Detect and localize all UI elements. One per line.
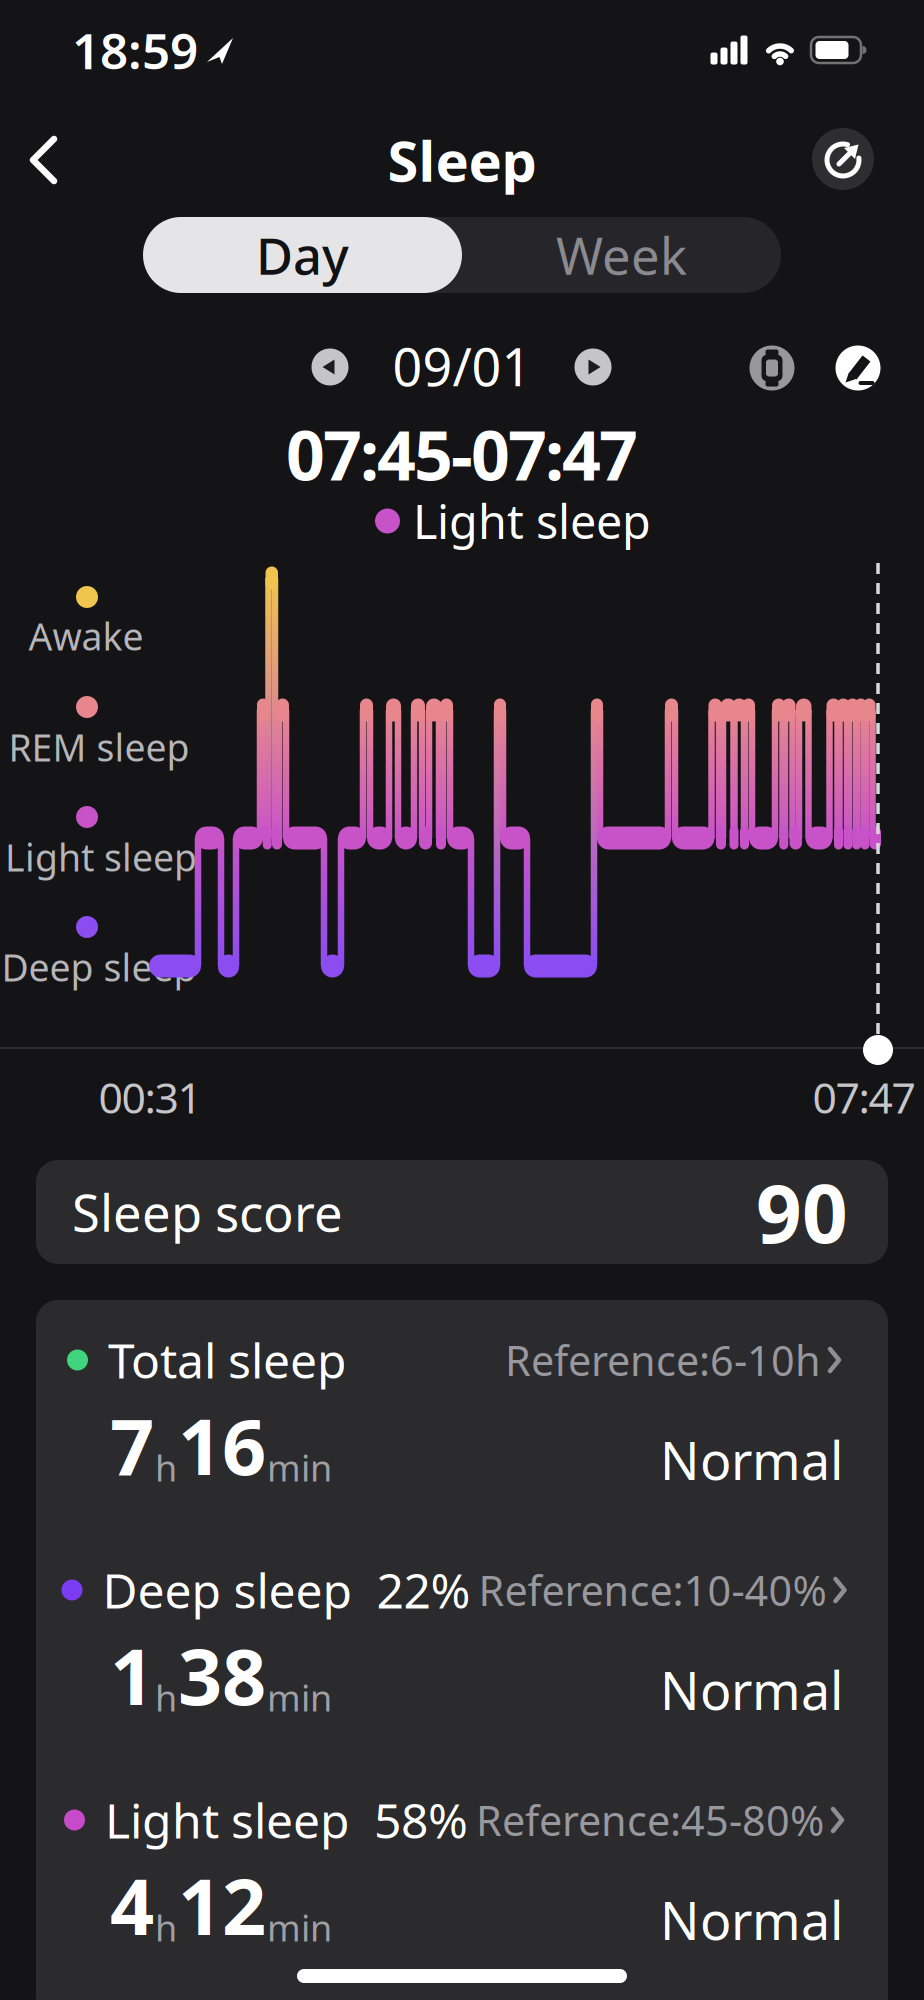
staticText: 90: [756, 1159, 848, 1265]
staticText: Deep sleep: [1, 942, 196, 992]
button[interactable]: [311, 348, 348, 385]
staticText: min: [267, 1673, 332, 1721]
button[interactable]: Total sleep: [67, 1337, 843, 1475]
button[interactable]: Week: [462, 217, 781, 293]
staticText: Total sleep: [108, 1328, 347, 1392]
staticText: 1: [110, 1624, 154, 1726]
staticText: Normal: [660, 1425, 843, 1494]
staticText: 58%: [374, 1788, 468, 1852]
staticText: Reference:45-80%: [476, 1793, 824, 1847]
staticText: Normal: [660, 1655, 843, 1724]
staticText: Deep sleep: [102, 1558, 352, 1622]
button[interactable]: [812, 128, 874, 190]
staticText: Day: [256, 221, 349, 289]
staticText: Reference:10-40%: [478, 1563, 826, 1617]
staticText: Awake: [28, 611, 143, 661]
button[interactable]: Deep sleep: [67, 1567, 843, 1705]
staticText: Sleep: [387, 123, 536, 197]
button[interactable]: [835, 345, 880, 390]
staticText: Week: [556, 221, 687, 289]
button[interactable]: Light sleep: [67, 1797, 843, 1935]
staticText: Sleep score: [72, 1178, 343, 1246]
staticText: Normal: [660, 1885, 843, 1954]
staticText: Light sleep: [105, 1788, 350, 1852]
staticText: 16: [178, 1394, 266, 1496]
staticText: Light sleep: [413, 490, 651, 552]
staticText: Light sleep: [5, 832, 197, 882]
staticText: h: [155, 1443, 177, 1491]
staticText: 38: [178, 1624, 266, 1726]
staticText: 4: [110, 1854, 154, 1956]
staticText: h: [155, 1673, 177, 1721]
button[interactable]: [574, 348, 611, 385]
button[interactable]: [30, 134, 60, 186]
staticText: 07:47: [812, 1069, 915, 1125]
staticText: 09/01: [392, 331, 531, 401]
staticText: 18:59: [72, 17, 198, 83]
staticText: 12: [178, 1854, 266, 1956]
staticText: h: [155, 1903, 177, 1951]
staticText: 07:45-07:47: [286, 409, 638, 499]
button[interactable]: Sleep score: [36, 1160, 888, 1264]
button[interactable]: [749, 345, 794, 390]
staticText: 22%: [376, 1558, 470, 1622]
staticText: 00:31: [98, 1069, 201, 1125]
staticText: min: [267, 1903, 332, 1951]
staticText: min: [267, 1443, 332, 1491]
staticText: 7: [110, 1394, 154, 1496]
staticText: Reference:6-10h: [505, 1333, 821, 1387]
staticText: REM sleep: [8, 722, 189, 772]
button[interactable]: Day: [143, 217, 462, 293]
